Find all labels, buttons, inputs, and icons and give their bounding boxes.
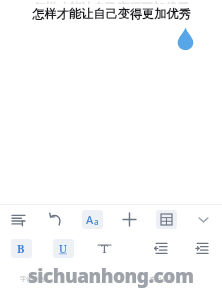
button[interactable]: Insert bbox=[111, 205, 148, 234]
button[interactable]: Collapse toolbar bbox=[185, 205, 222, 234]
staticText: T bbox=[101, 241, 108, 256]
staticText: sichuanhong.com bbox=[28, 263, 194, 289]
staticText: U bbox=[59, 241, 67, 256]
button[interactable]: Paragraph alignment bbox=[0, 205, 37, 234]
button[interactable]: Increase indent bbox=[181, 234, 222, 262]
button[interactable]: Insert table bbox=[148, 205, 185, 234]
staticText: a bbox=[94, 216, 99, 227]
button[interactable]: Strikethrough bbox=[84, 234, 125, 262]
button[interactable]: Font style bbox=[74, 205, 111, 234]
button[interactable]: Decrease indent bbox=[140, 234, 181, 262]
button[interactable]: Bold bbox=[0, 234, 42, 262]
staticText: A bbox=[86, 212, 94, 227]
staticText: 突出显示 bbox=[150, 275, 174, 283]
staticText: 字体颜色 bbox=[20, 275, 44, 283]
staticText: 怎样才能让自己变得更加优秀 bbox=[33, 0, 189, 4]
staticText: B bbox=[17, 241, 25, 256]
staticText: 怎样才能让自己变得更加优秀 bbox=[32, 6, 191, 21]
button[interactable]: Undo bbox=[37, 205, 74, 234]
other: Water drop image bbox=[177, 27, 194, 50]
button[interactable]: Underline bbox=[42, 234, 84, 262]
